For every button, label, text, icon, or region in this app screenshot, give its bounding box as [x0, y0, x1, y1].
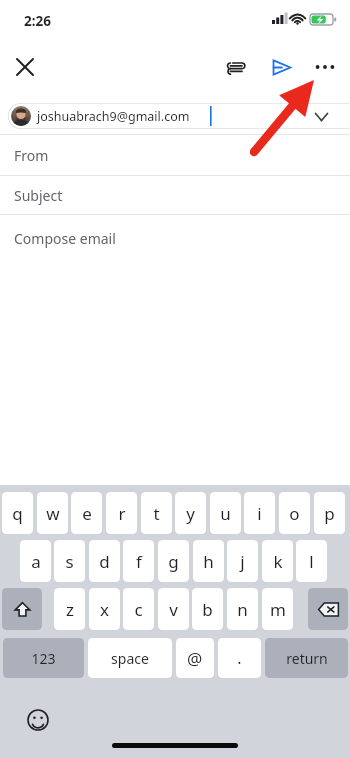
staticText: joshuabrach9@gmail.com [37, 108, 190, 125]
button[interactable]: Subject [0, 176, 350, 214]
staticText: 123 [31, 649, 56, 668]
staticText: y [186, 502, 195, 525]
button[interactable]: i [244, 492, 275, 534]
button[interactable]: More options [306, 48, 344, 86]
button[interactable]: q [2, 492, 33, 534]
button[interactable]: b [192, 588, 223, 630]
button[interactable]: l [296, 540, 327, 582]
button[interactable]: Compose email [0, 215, 350, 261]
button[interactable]: m [262, 588, 293, 630]
button[interactable]: 123 [3, 638, 84, 678]
staticText: Subject [14, 186, 63, 205]
staticText: g [168, 550, 179, 573]
button[interactable]: k [262, 540, 293, 582]
button[interactable]: Close [6, 48, 44, 86]
button[interactable]: j [227, 540, 258, 582]
staticText: a [31, 550, 41, 573]
button[interactable]: p [314, 492, 345, 534]
button[interactable]: . [218, 638, 261, 678]
staticText: h [203, 550, 214, 573]
staticText: c [134, 598, 143, 621]
button[interactable]: joshuabrach9@gmail.com [8, 103, 350, 129]
staticText: 2:26 [24, 12, 51, 30]
staticText: j [240, 550, 245, 573]
button[interactable]: Backspace [308, 588, 348, 630]
staticText: return [286, 649, 328, 668]
button[interactable]: From [0, 135, 350, 175]
button[interactable]: space [88, 638, 172, 678]
staticText: w [46, 502, 60, 525]
staticText: v [169, 598, 178, 621]
staticText: o [289, 502, 300, 525]
staticText: space [111, 649, 149, 668]
staticText: x [100, 598, 109, 621]
staticText: q [12, 502, 23, 525]
staticText: d [99, 550, 110, 573]
staticText: t [153, 502, 160, 525]
button[interactable]: d [89, 540, 120, 582]
button[interactable]: f [123, 540, 154, 582]
button[interactable]: Emoji [26, 708, 50, 732]
button[interactable]: At sign [176, 638, 214, 678]
staticText: e [82, 502, 92, 525]
staticText: b [202, 598, 213, 621]
button[interactable]: Send [262, 48, 300, 86]
staticText: @ [187, 647, 203, 670]
staticText: s [65, 550, 74, 573]
button[interactable]: return [265, 638, 348, 678]
staticText: u [220, 502, 231, 525]
button[interactable]: v [158, 588, 189, 630]
button[interactable]: Attach file [217, 48, 255, 86]
button[interactable]: o [279, 492, 310, 534]
staticText: . [237, 647, 242, 669]
staticText: k [273, 550, 283, 573]
button[interactable]: x [89, 588, 120, 630]
button[interactable]: Shift [2, 588, 42, 630]
button[interactable]: a [20, 540, 51, 582]
staticText: m [270, 598, 286, 621]
staticText: p [324, 502, 335, 525]
button[interactable]: n [227, 588, 258, 630]
button[interactable]: e [71, 492, 102, 534]
button[interactable]: s [54, 540, 85, 582]
button[interactable]: c [123, 588, 154, 630]
button[interactable]: g [158, 540, 189, 582]
button[interactable]: t [141, 492, 172, 534]
staticText: z [66, 598, 74, 621]
staticText: l [309, 550, 314, 573]
staticText: r [118, 502, 126, 525]
staticText: i [257, 502, 262, 525]
staticText: From [14, 146, 49, 165]
button[interactable]: u [210, 492, 241, 534]
button[interactable]: w [37, 492, 68, 534]
staticText: n [237, 598, 248, 621]
button[interactable]: z [54, 588, 85, 630]
button[interactable]: y [175, 492, 206, 534]
button[interactable]: h [193, 540, 224, 582]
staticText: Compose email [14, 229, 116, 248]
button[interactable]: Expand recipients [306, 102, 336, 132]
button[interactable]: r [106, 492, 137, 534]
staticText: f [136, 550, 142, 573]
